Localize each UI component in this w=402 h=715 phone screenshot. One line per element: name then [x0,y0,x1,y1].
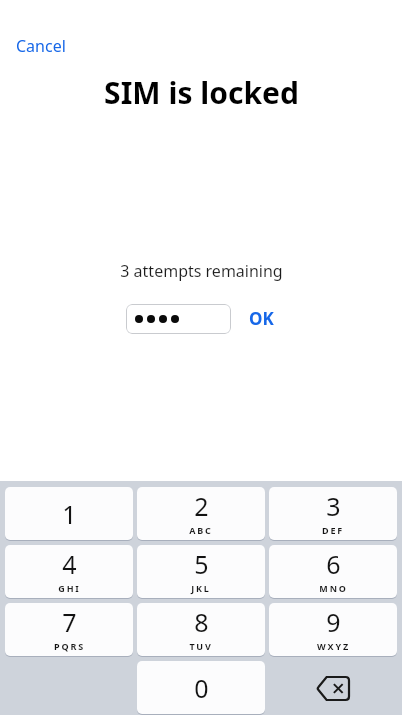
staticText: 3 attempts remaining [120,260,283,282]
button[interactable]: 5 [137,545,265,599]
staticText: 2 [194,489,209,523]
button[interactable]: 8 [137,603,265,657]
button[interactable]: Delete [269,661,397,715]
staticText: 3 [326,489,341,523]
button[interactable]: 9 [269,603,397,657]
staticText: 5 [194,547,209,581]
staticText: JKL [191,582,211,594]
button[interactable]: 3 [269,487,397,541]
staticText: Cancel [16,35,66,57]
button[interactable]: 2 [137,487,265,541]
button[interactable]: 1 [5,487,133,541]
staticText: MNO [319,582,348,594]
staticText: 7 [62,605,77,639]
staticText: 9 [326,605,341,639]
button[interactable]: 0 [137,661,265,715]
staticText: SIM is locked [104,72,299,113]
staticText: PQRS [54,640,85,652]
staticText: 0 [194,671,209,705]
button[interactable]: 4 [5,545,133,599]
staticText: ABC [189,524,213,536]
button[interactable]: Cancel [16,33,66,59]
button[interactable]: OK [247,303,276,334]
staticText: TUV [189,640,213,652]
staticText: 6 [326,547,341,581]
staticText: GHI [58,582,81,594]
button[interactable]: 6 [269,545,397,599]
button[interactable]: 7 [5,603,133,657]
staticText: DEF [322,524,344,536]
staticText: OK [249,307,274,330]
staticText: 8 [194,605,209,639]
staticText: 4 [62,547,77,581]
button[interactable] [126,304,231,334]
staticText: WXYZ [317,640,350,652]
staticText: 1 [62,497,77,531]
